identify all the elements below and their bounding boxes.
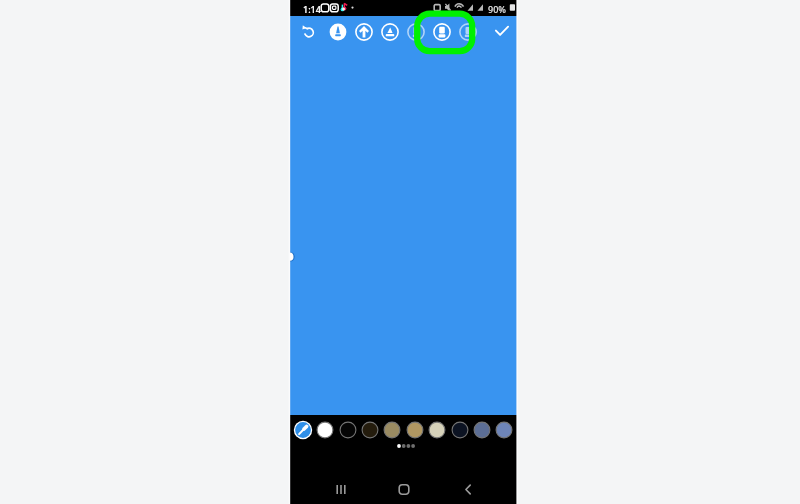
button[interactable]: Colour 8: [471, 419, 493, 441]
staticText: 1:14: [303, 3, 321, 15]
button[interactable]: Colour 7: [449, 419, 471, 441]
staticText: 90%: [488, 3, 506, 15]
button[interactable]: Undo: [296, 16, 322, 48]
button[interactable]: Recent apps: [319, 468, 363, 504]
button[interactable]: Colour 2: [337, 419, 359, 441]
button[interactable]: Colour 9: [493, 419, 515, 441]
button[interactable]: Line thickness: [351, 16, 377, 48]
button[interactable]: Colour 5: [404, 419, 426, 441]
button[interactable]: Pen: [325, 16, 351, 48]
button[interactable]: Done: [489, 16, 515, 48]
button[interactable]: Marker: [403, 16, 429, 48]
button[interactable]: Eraser: [429, 16, 455, 48]
button[interactable]: Colour picker: [292, 419, 314, 441]
button[interactable]: Shape tool: [455, 16, 481, 48]
button[interactable]: Colour 3: [359, 419, 381, 441]
button[interactable]: Home: [382, 468, 426, 504]
button[interactable]: Colour 6: [426, 419, 448, 441]
button[interactable]: Colour 4: [381, 419, 403, 441]
button[interactable]: Colour 1: [314, 419, 336, 441]
button[interactable]: Back: [446, 468, 490, 504]
button[interactable]: Brush: [377, 16, 403, 48]
